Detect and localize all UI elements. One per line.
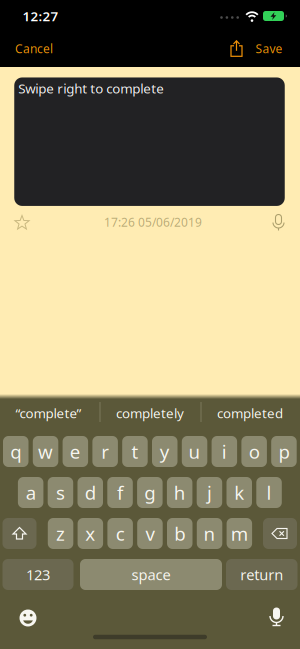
button[interactable]: o [241,436,267,467]
button[interactable] [263,518,297,549]
button[interactable]: g [137,477,163,508]
staticText: g [144,480,155,505]
staticText: e [70,439,81,464]
staticText: s [56,480,65,505]
staticText: Cancel [15,40,53,56]
button[interactable]: x [78,518,103,549]
staticText: b [174,521,185,546]
button[interactable]: c [107,518,133,549]
button[interactable]: n [197,518,222,549]
button[interactable]: d [77,477,103,508]
button[interactable] [264,606,288,630]
button[interactable]: space [80,559,222,590]
button[interactable]: Swipe right to complete [14,77,285,206]
staticText: Save [255,40,282,56]
button[interactable]: b [167,518,192,549]
button[interactable]: Save [249,33,289,63]
staticText: k [234,480,244,505]
button[interactable]: y [152,436,177,467]
button[interactable]: k [226,477,252,508]
staticText: space [131,565,170,584]
button[interactable] [268,212,288,232]
button[interactable]: i [212,436,237,467]
staticText: 12:27 [22,7,58,25]
button[interactable]: p [271,436,297,467]
staticText: j [207,480,212,505]
staticText: x [85,521,95,546]
button[interactable]: 123 [2,559,73,590]
button[interactable]: z [48,518,73,549]
staticText: p [278,439,289,464]
button[interactable]: completely [102,398,197,428]
button[interactable]: completed [202,398,297,428]
staticText: t [131,439,138,464]
staticText: r [101,439,109,464]
staticText: u [189,439,201,464]
button[interactable]: t [122,436,148,467]
button[interactable] [2,518,36,549]
staticText: v [145,521,154,546]
staticText: 123 [26,565,50,584]
button[interactable]: h [167,477,192,508]
staticText: h [174,480,186,505]
staticText: i [222,439,227,464]
button[interactable]: q [3,436,28,467]
button[interactable]: f [107,477,133,508]
staticText: l [267,480,272,505]
staticText: z [56,521,65,546]
staticText: d [85,480,96,505]
button[interactable]: a [18,477,43,508]
button[interactable]: w [33,436,58,467]
staticText: y [160,439,170,464]
button[interactable]: “complete” [1,398,96,428]
staticText: a [26,480,36,505]
staticText: q [10,439,21,464]
staticText: completed [217,404,283,422]
staticText: f [117,480,123,505]
staticText: n [204,521,216,546]
button[interactable]: return [226,559,297,590]
button[interactable] [12,212,32,232]
staticText: return [240,565,283,584]
button[interactable]: v [137,518,163,549]
button[interactable]: e [63,436,88,467]
button[interactable]: s [48,477,73,508]
staticText: o [249,439,260,464]
button[interactable] [225,37,247,59]
button[interactable]: u [182,436,207,467]
staticText: “complete” [16,404,82,422]
staticText: w [38,439,53,464]
button[interactable]: l [256,477,282,508]
button[interactable] [18,608,38,628]
button[interactable]: r [92,436,118,467]
button[interactable]: j [197,477,222,508]
staticText: Swipe right to complete [18,79,164,97]
button[interactable]: m [227,518,252,549]
staticText: 17:26 05/06/2019 [104,214,202,230]
staticText: m [231,521,248,546]
staticText: c [116,521,125,546]
staticText: completely [116,404,184,422]
button[interactable]: Cancel [8,33,60,63]
